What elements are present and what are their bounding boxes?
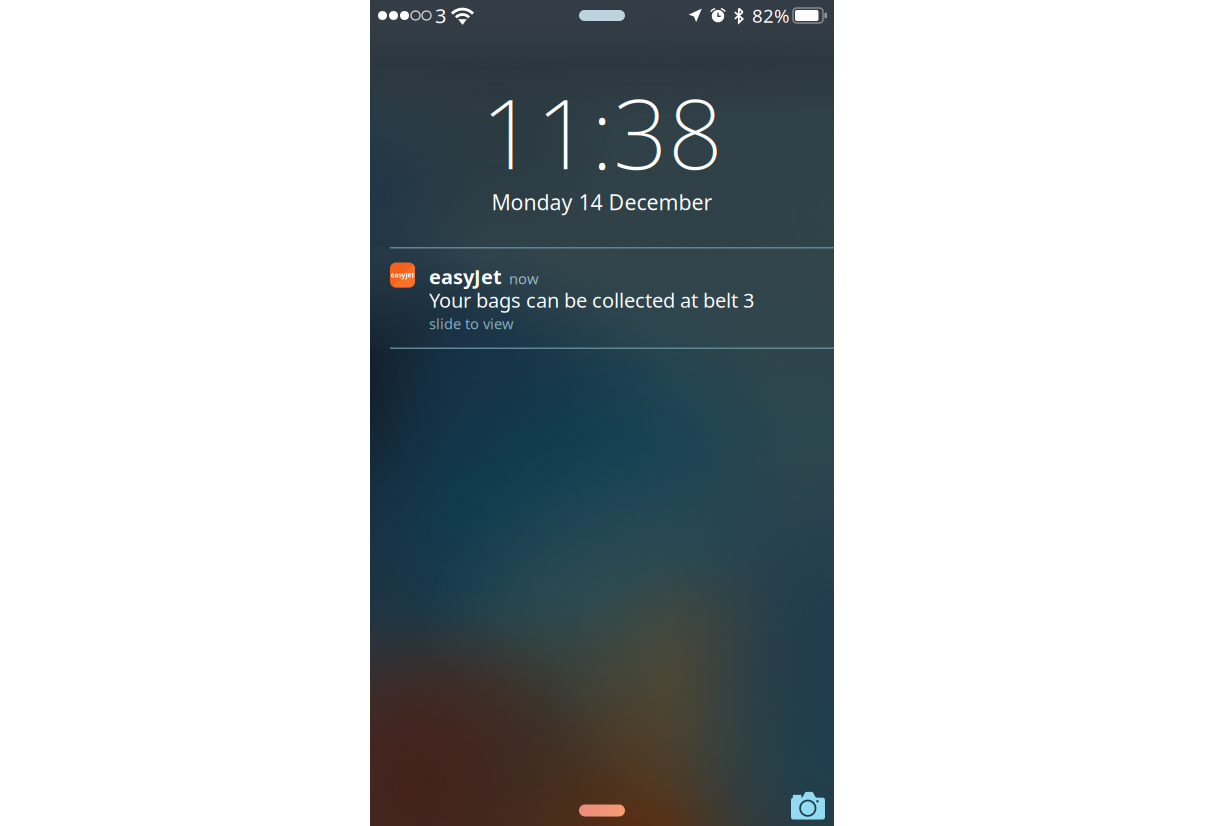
staticText: 11:38 bbox=[481, 68, 723, 196]
staticText: slide to view bbox=[429, 314, 514, 333]
staticText: now bbox=[509, 269, 539, 288]
staticText: 3 bbox=[435, 2, 446, 29]
staticText: 82% bbox=[752, 3, 790, 28]
staticText: Monday 14 December bbox=[491, 188, 712, 216]
staticText: easyJet bbox=[390, 271, 414, 279]
staticText: Your bags can be collected at belt 3 bbox=[429, 287, 754, 313]
button[interactable]: easyJet bbox=[370, 247, 834, 349]
staticText: easyJet bbox=[429, 263, 502, 290]
button[interactable]: Camera bbox=[791, 791, 825, 819]
